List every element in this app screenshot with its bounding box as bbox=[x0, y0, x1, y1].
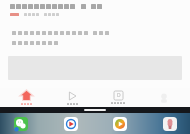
button[interactable]: Discover bbox=[98, 88, 138, 107]
button[interactable]: Videos bbox=[52, 88, 92, 107]
button[interactable]: Video app bbox=[63, 116, 78, 131]
button[interactable]: Home bbox=[6, 88, 46, 107]
button[interactable] bbox=[10, 4, 180, 9]
button[interactable]: Photos bbox=[162, 116, 177, 131]
button[interactable]: Media player bbox=[112, 116, 127, 131]
staticText: D bbox=[117, 92, 121, 99]
button[interactable]: WeChat bbox=[13, 116, 28, 131]
